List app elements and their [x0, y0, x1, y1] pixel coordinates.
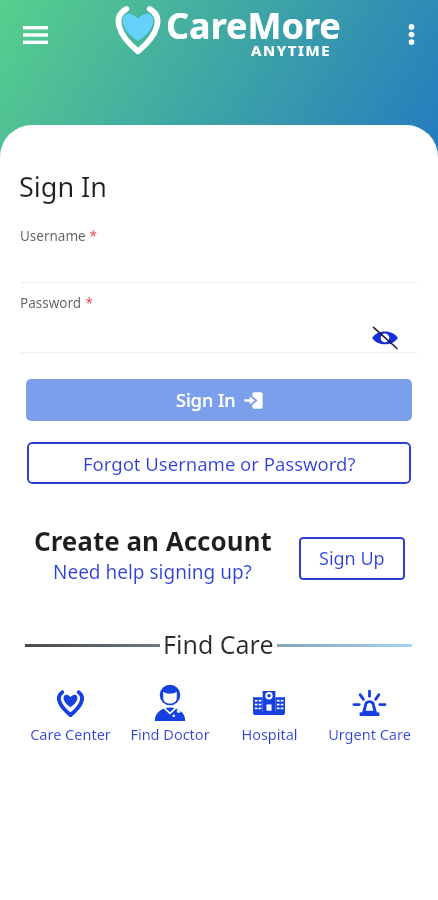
button[interactable]: Sign In	[26, 379, 412, 421]
staticText: Sign Up	[319, 546, 385, 571]
staticText: Find Care	[163, 627, 274, 661]
staticText: Care Center	[30, 724, 111, 744]
button[interactable]: Hospital	[224, 683, 314, 744]
button[interactable]: Sign Up	[299, 537, 405, 580]
staticText: Forgot Username or Password?	[83, 451, 356, 476]
button[interactable]: Show password	[368, 320, 402, 354]
button[interactable]: Menu	[13, 13, 57, 57]
staticText: Need help signing up?	[53, 559, 252, 585]
staticText: Urgent Care	[328, 724, 411, 744]
staticText: Username	[20, 227, 86, 245]
staticText: Sign In	[19, 168, 107, 205]
staticText: Sign In	[176, 388, 236, 413]
staticText: Password	[20, 294, 82, 312]
staticText: Find Doctor	[130, 724, 210, 744]
button[interactable]: Find Doctor	[125, 683, 215, 744]
staticText: Create an Account	[34, 523, 272, 558]
button[interactable]: More options	[390, 13, 432, 55]
button[interactable]: Urgent Care	[324, 683, 414, 744]
button[interactable]: Forgot Username or Password?	[27, 442, 411, 484]
staticText: ANYTIME	[251, 40, 332, 60]
staticText: *	[86, 227, 97, 245]
staticText: CareMore	[166, 1, 341, 50]
staticText: Hospital	[241, 724, 298, 744]
staticText: *	[82, 294, 93, 312]
button[interactable]: Care Center	[25, 683, 115, 744]
